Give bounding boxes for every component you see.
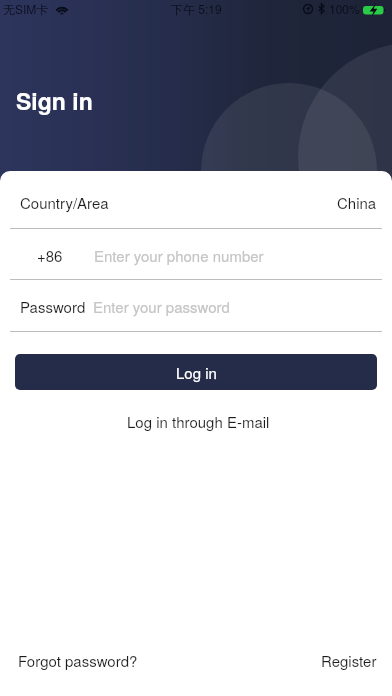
staticText: China	[337, 192, 377, 213]
staticText: Log in	[176, 362, 217, 383]
button[interactable]: Country/Area	[0, 176, 392, 228]
staticText: 无SIM卡	[3, 0, 49, 17]
staticText: Sign in	[16, 84, 93, 117]
staticText: Password	[20, 296, 86, 317]
staticText: +86	[37, 245, 63, 266]
staticText: 下午 5:19	[171, 0, 222, 17]
button[interactable]: Forgot password?	[18, 650, 138, 671]
staticText: Enter your password	[93, 296, 230, 317]
button[interactable]: Log in	[15, 354, 377, 390]
staticText: Country/Area	[20, 192, 109, 213]
button[interactable]: Register	[321, 650, 377, 671]
staticText: 100%	[329, 0, 360, 17]
staticText: Log in through E-mail	[127, 411, 270, 432]
staticText: Enter your phone number	[94, 245, 264, 266]
staticText: Register	[321, 650, 377, 671]
staticText: Forgot password?	[18, 650, 138, 671]
button[interactable]: Log in through E-mail	[117, 405, 280, 438]
